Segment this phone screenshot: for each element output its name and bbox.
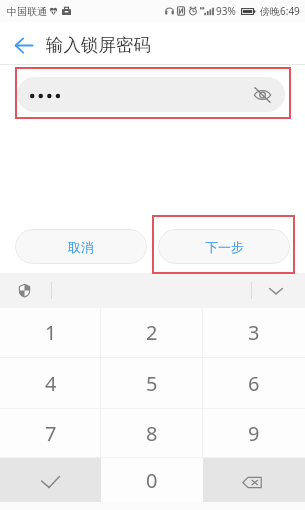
staticText: 傍晚6:49	[260, 4, 300, 18]
button[interactable]: 5	[101, 358, 203, 408]
button[interactable]: 0	[101, 458, 203, 502]
staticText: 9	[248, 420, 260, 447]
staticText: 93%	[216, 4, 236, 18]
button[interactable]: 3	[203, 308, 305, 357]
button[interactable]: Show password	[247, 80, 277, 110]
button[interactable]: 9	[203, 409, 305, 457]
button[interactable]: 8	[101, 409, 203, 457]
staticText: 输入锁屏密码	[46, 34, 151, 56]
staticText: 7	[45, 420, 57, 447]
other: Secure input	[19, 284, 30, 297]
button[interactable]: Hide keyboard	[264, 276, 288, 306]
staticText: 取消	[68, 239, 94, 255]
staticText: 5	[146, 370, 158, 397]
staticText: 1	[45, 319, 57, 346]
staticText: 4	[45, 370, 57, 397]
button[interactable]: 1	[0, 308, 101, 357]
button[interactable]: 取消	[15, 229, 147, 264]
staticText: 下一步	[205, 239, 244, 255]
button[interactable]: 2	[101, 308, 203, 357]
staticText: 3	[248, 319, 260, 346]
button[interactable]: Back	[0, 22, 46, 64]
staticText: 6	[248, 370, 260, 397]
staticText: 2	[146, 319, 158, 346]
staticText: 中国联通	[7, 5, 47, 18]
staticText: 8	[146, 420, 158, 447]
button[interactable]: 下一步	[158, 229, 290, 264]
button[interactable]: Show password	[17, 77, 285, 112]
button[interactable]: 6	[203, 358, 305, 408]
button[interactable]: Backspace	[203, 458, 305, 502]
button[interactable]: 4	[0, 358, 101, 408]
button[interactable]: Confirm	[0, 458, 101, 502]
button[interactable]: 7	[0, 409, 101, 457]
staticText: 0	[146, 467, 158, 494]
